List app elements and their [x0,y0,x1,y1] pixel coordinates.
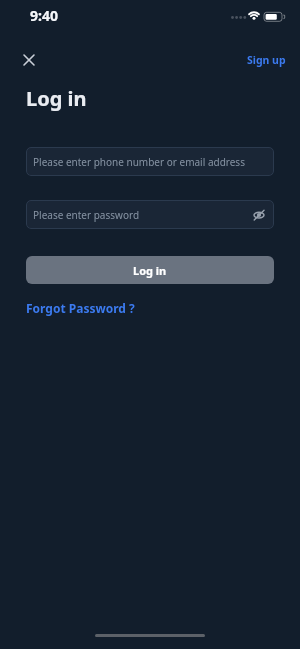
button[interactable]: Please enter password [26,200,274,229]
button[interactable]: Please enter phone number or email addre… [26,147,274,176]
staticText: Sign up [247,53,286,67]
button[interactable]: Sign up [247,53,286,67]
button[interactable]: Log in [26,256,274,284]
staticText: Forgot Password ? [26,300,135,316]
staticText: Please enter password [33,208,140,222]
staticText: Log in [133,263,167,278]
button[interactable]: Forgot Password ? [26,300,135,316]
staticText: 9:40 [30,6,58,25]
staticText: Please enter phone number or email addre… [33,155,245,169]
staticText: Log in [26,85,87,112]
button[interactable] [20,52,38,68]
